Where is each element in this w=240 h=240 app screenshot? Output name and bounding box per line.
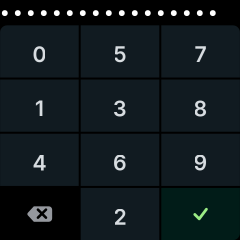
button[interactable]: 2 (81, 188, 159, 240)
staticText: 7 (195, 41, 207, 67)
button[interactable]: Confirm (161, 188, 240, 240)
button[interactable]: 9 (161, 134, 240, 186)
staticText: 6 (113, 150, 127, 176)
button[interactable]: 6 (81, 134, 159, 186)
button[interactable]: 7 (161, 25, 240, 77)
staticText: 3 (113, 96, 127, 121)
staticText: 1 (35, 96, 44, 121)
button[interactable]: 4 (0, 134, 79, 186)
button[interactable]: 3 (81, 79, 159, 132)
button[interactable]: 0 (0, 25, 79, 77)
staticText: 8 (194, 96, 208, 121)
staticText: 5 (113, 41, 126, 67)
button[interactable]: 5 (81, 25, 159, 77)
staticText: 9 (194, 150, 208, 176)
button[interactable]: Delete (0, 188, 79, 240)
staticText: 2 (113, 204, 126, 230)
button[interactable]: 8 (161, 79, 240, 132)
staticText: 4 (32, 150, 46, 176)
button[interactable]: 1 (0, 79, 79, 132)
staticText: 0 (32, 41, 46, 67)
